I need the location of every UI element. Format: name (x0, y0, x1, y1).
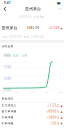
button[interactable]: 日K (22, 54, 27, 57)
staticText: 1682.00 (26, 26, 39, 30)
staticText: +0.74% ▲ (48, 26, 62, 30)
staticText: 贵州茅台 (25, 6, 41, 11)
staticText: 主力净流入 (1, 104, 16, 107)
staticText: 今开 1670.00 昨收 1669.66 (2, 35, 44, 39)
button[interactable]: Back (2, 7, 8, 11)
staticText: -120万 ▼ (49, 122, 62, 125)
button[interactable]: 中单净额 (0, 120, 64, 126)
button[interactable]: 超大单净额 (0, 108, 64, 114)
staticText: 15:00 (58, 92, 62, 93)
staticText: 中单净额 (1, 122, 13, 125)
staticText: 1700 (3, 65, 11, 69)
button[interactable]: 分时 (4, 54, 10, 57)
staticText: 10:30 (15, 92, 19, 93)
staticText: 超大单净额 (1, 110, 16, 113)
staticText: 分时走势 (1, 45, 13, 48)
staticText: 日K (22, 54, 27, 57)
staticText: +3400万 ▲ (46, 116, 62, 119)
button[interactable]: 主力净流入 (0, 102, 64, 108)
staticText: 五日 (13, 54, 19, 57)
staticText: +8900万 ▲ (46, 110, 62, 113)
staticText: 1680 (3, 77, 11, 80)
staticText: 14:00 (44, 92, 48, 93)
staticText: 贵州茅台 (1, 25, 17, 30)
staticText: ▮▮▮ (57, 1, 60, 4)
staticText: +1.23亿 ▲ (47, 104, 62, 107)
staticText: 1660 (3, 88, 11, 92)
staticText: 分时 (4, 54, 10, 57)
button[interactable]: 五日 (13, 54, 19, 57)
staticText: ··· (58, 6, 61, 12)
staticText: 大单净额 (1, 116, 13, 119)
staticText: 600519 沪市A股 (19, 15, 44, 19)
staticText: 9:41 (4, 1, 11, 5)
button[interactable]: More (58, 6, 61, 12)
staticText: 1720 (3, 54, 11, 57)
staticText: 资金流向 (1, 97, 13, 100)
staticText: 11:30 (29, 92, 33, 93)
button[interactable]: 大单净额 (0, 114, 64, 120)
